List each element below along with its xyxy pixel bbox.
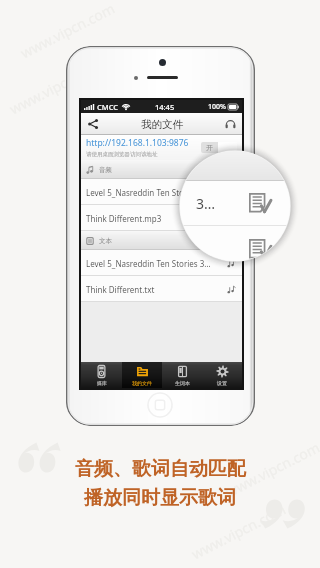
staticText: 文本 [99, 237, 112, 245]
button[interactable]: Level 5_Nasreddin Ten Sto [81, 179, 242, 205]
staticText: www.vipcn.com [17, 0, 118, 62]
button[interactable]: 媒库 [81, 362, 122, 388]
staticText: Level 5_Nasreddin Ten Stories 3… [86, 258, 211, 269]
staticText: 我的文件 [132, 380, 152, 386]
staticText: www.vipcn.com [188, 500, 289, 563]
staticText: 14:45 [155, 102, 175, 112]
staticText: Think Different.txt [86, 284, 155, 295]
button[interactable]: Headphones [221, 115, 239, 133]
staticText: 请使用桌面浏览器访问该地址 [86, 151, 158, 158]
staticText: 100% [208, 102, 226, 112]
staticText: www.vipcn.com [222, 438, 320, 501]
staticText: 播放同时显示歌词 [84, 486, 236, 510]
staticText: http://192.168.1.103:9876 [86, 137, 189, 149]
button[interactable]: 设置 [202, 362, 242, 388]
staticText: 我的文件 [141, 118, 183, 131]
button[interactable]: Think Different.txt [81, 276, 242, 302]
button[interactable]: 开 [201, 142, 237, 153]
button[interactable]: 我的文件 [122, 362, 162, 388]
staticText: Think Different.mp3 [86, 213, 162, 224]
staticText: Level 5_Nasreddin Ten Sto [86, 187, 184, 198]
button[interactable]: 生词本 [162, 362, 202, 388]
staticText: 音频 [99, 166, 112, 174]
staticText: 开 [206, 143, 213, 152]
button[interactable]: Think Different.mp3 [81, 205, 242, 231]
staticText: 音频、歌词自动匹配 [75, 457, 246, 481]
staticText: www.vipcn.com [6, 55, 107, 118]
button[interactable]: Share [84, 115, 102, 133]
button[interactable]: Level 5_Nasreddin Ten Stories 3… [81, 250, 242, 276]
staticText: 设置 [217, 380, 227, 386]
staticText: 生词本 [175, 380, 190, 386]
staticText: 媒库 [97, 380, 107, 386]
staticText: 3… [196, 194, 216, 213]
staticText: CMCC [97, 102, 119, 112]
